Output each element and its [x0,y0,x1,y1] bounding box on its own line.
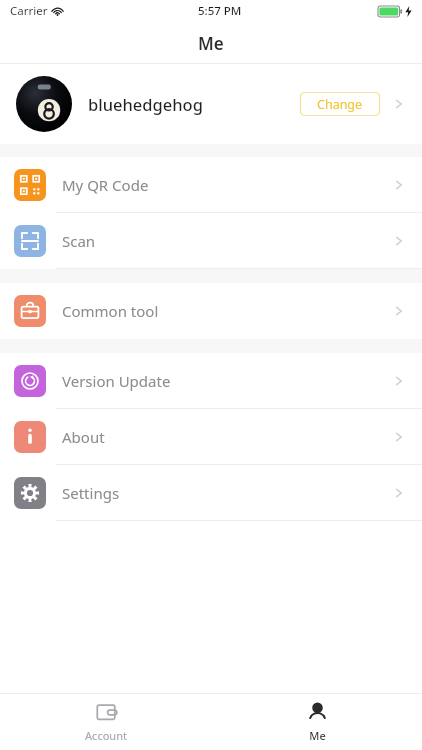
button[interactable]: About [0,409,422,465]
button[interactable]: Account [70,693,142,750]
staticText: 5:57 PM [198,3,242,19]
button[interactable]: Scan [0,213,422,269]
staticText: Change [317,96,363,113]
staticText: Settings [62,483,120,503]
staticText: My QR Code [62,175,149,195]
staticText: Me [198,32,224,55]
staticText: Account [85,728,127,743]
button[interactable]: Settings [0,465,422,521]
button[interactable]: Change [300,92,380,116]
staticText: Scan [62,231,96,251]
button[interactable]: My QR Code [0,157,422,213]
button[interactable]: Common tool [0,283,422,339]
staticText: About [62,427,105,447]
button[interactable]: Version Update [0,353,422,409]
button[interactable]: Me [281,693,353,750]
staticText: Version Update [62,371,171,391]
staticText: Common tool [62,301,159,321]
staticText: bluehedgehog [88,93,203,115]
staticText: Me [309,728,326,743]
button[interactable]: bluehedgehog [0,64,422,144]
staticText: Carrier [10,3,48,19]
